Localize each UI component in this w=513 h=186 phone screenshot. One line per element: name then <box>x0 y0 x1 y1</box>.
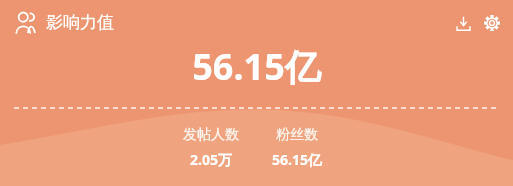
button[interactable]: 发帖人数 <box>168 126 253 169</box>
staticText: 粉丝数 <box>276 126 318 144</box>
staticText: 影响力值 <box>46 12 114 33</box>
button[interactable]: 粉丝数 <box>259 126 335 169</box>
button[interactable]: 影响力值 <box>13 10 114 35</box>
staticText: 56.15亿 <box>272 150 322 169</box>
button[interactable]: 56.15亿 <box>192 42 321 91</box>
button[interactable]: Download <box>451 11 475 35</box>
button[interactable]: Settings <box>480 11 504 35</box>
staticText: 56.15亿 <box>192 42 321 91</box>
staticText: 2.05万 <box>190 150 232 169</box>
staticText: 发帖人数 <box>183 126 239 144</box>
